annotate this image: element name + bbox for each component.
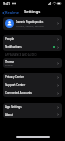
staticText: About [5, 113, 13, 117]
staticText: System [5, 64, 13, 67]
staticText: 9:41 [3, 1, 11, 6]
staticText: Ioannis Papadopoulos [16, 20, 44, 24]
button[interactable]: About [3, 111, 62, 118]
button[interactable]: Ioannis Papadopoulos [3, 17, 62, 30]
staticText: APPEARANCE AND AUDIO [5, 53, 37, 57]
button[interactable]: Support Center [3, 81, 62, 89]
staticText: Support Center [5, 83, 26, 87]
button[interactable]: Realme [0, 9, 22, 16]
staticText: Privacy Center [5, 75, 24, 79]
button[interactable]: Connected Accounts [3, 89, 62, 97]
button[interactable]: Theme [3, 58, 62, 68]
staticText: Theme [5, 60, 15, 64]
staticText: People [5, 37, 14, 41]
staticText: Settings [24, 9, 41, 15]
button[interactable]: Notifications [3, 43, 62, 51]
button[interactable]: People [3, 35, 62, 43]
staticText: Connected Accounts [5, 91, 32, 95]
staticText: Realme [5, 10, 20, 15]
staticText: App Settings [5, 105, 22, 109]
button[interactable]: Privacy Center [3, 73, 62, 81]
button[interactable]: App Settings [3, 103, 62, 111]
staticText: Account, Security, Payment [16, 25, 44, 28]
staticText: Notifications [5, 45, 22, 49]
